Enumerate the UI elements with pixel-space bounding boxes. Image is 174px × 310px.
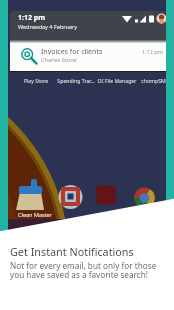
staticText: OI File Manager: [96, 77, 138, 84]
staticText: Clean Master: [18, 211, 52, 218]
staticText: Get Instant Notifications: [10, 244, 134, 259]
staticText: Spending Trac..: [56, 77, 96, 84]
other: Status icons: [120, 13, 166, 24]
staticText: 1:12 pm: [142, 48, 163, 55]
staticText: Play Store: [16, 77, 56, 84]
staticText: Not for every email, but only for those …: [10, 260, 157, 280]
staticText: chompSMS: [136, 77, 166, 84]
staticText: 1:12 pm: [18, 13, 46, 23]
staticText: Wednesday 4 February: [18, 23, 78, 30]
staticText: Invoices for clients: [41, 47, 103, 57]
staticText: Charles Stone: [41, 56, 77, 63]
